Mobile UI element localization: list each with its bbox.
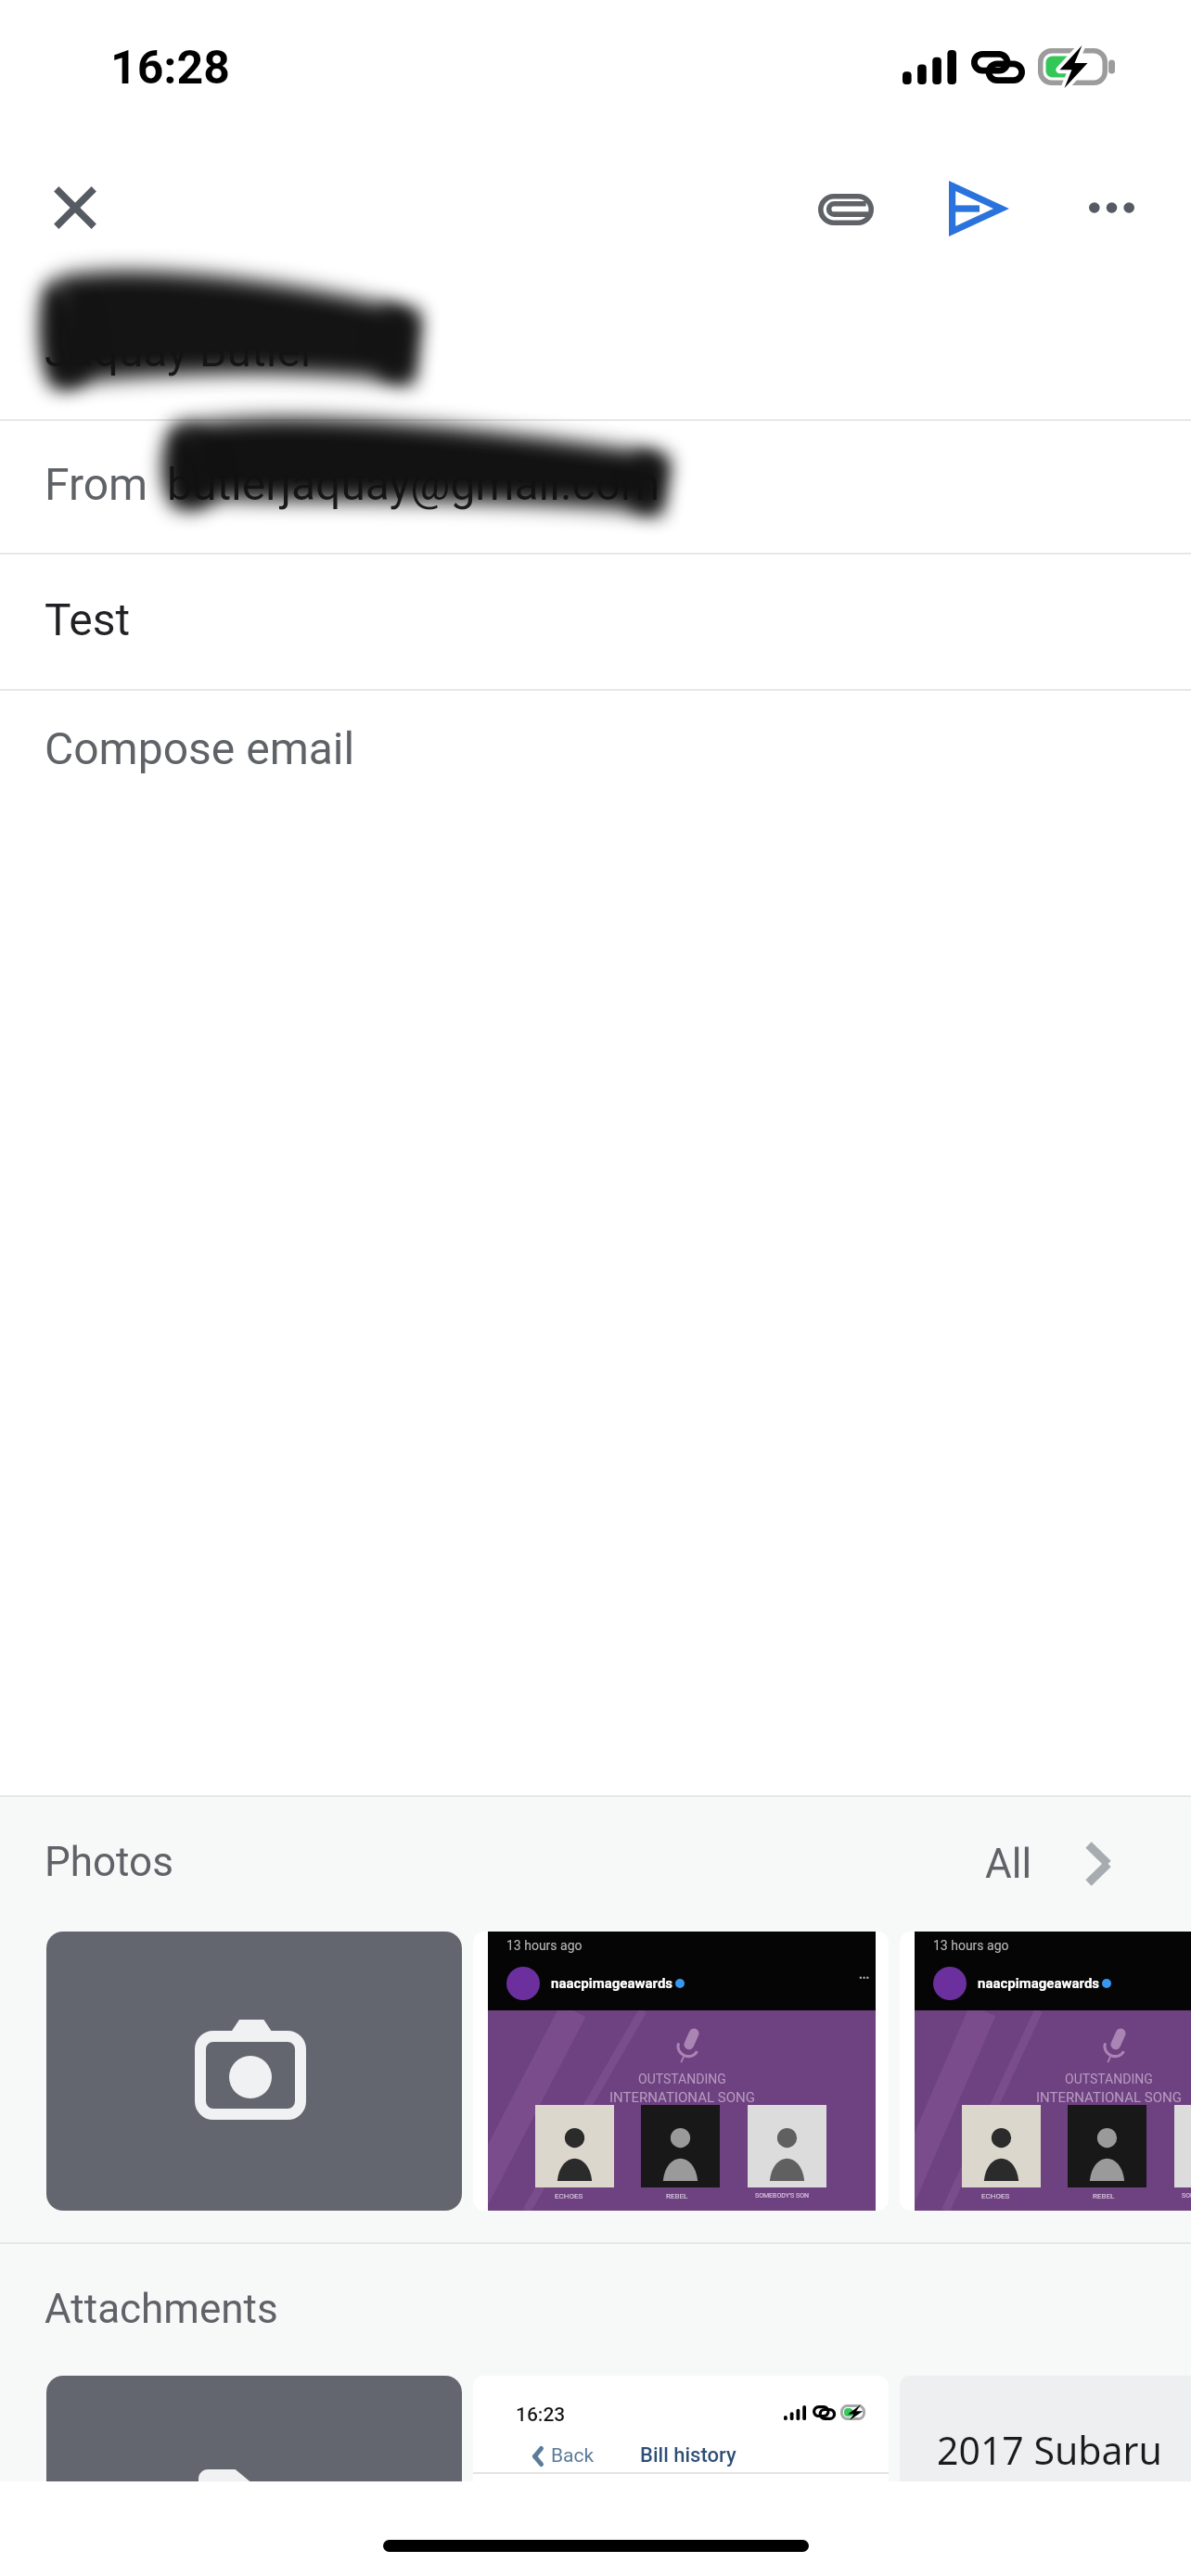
staticText: naacpimageawards (551, 1975, 673, 1992)
other: VPN (971, 51, 1025, 83)
staticText: Compose email (45, 722, 355, 774)
staticText: Test (45, 593, 131, 645)
staticText: Photos (45, 1838, 173, 1886)
button[interactable]: Attach file (790, 154, 902, 265)
staticText: 13 hours ago (506, 1938, 583, 1953)
staticText: Jaquay Butler (45, 325, 316, 376)
button[interactable]: Photo (900, 1932, 1191, 2211)
staticText: Attachments (45, 2285, 278, 2333)
staticText: From (45, 458, 148, 510)
staticText: REBEL (1093, 2192, 1115, 2200)
staticText: INTERNATIONAL SONG (1036, 2089, 1182, 2106)
button[interactable]: Send (921, 153, 1032, 264)
staticText: SOMEBODY'S SON (755, 2192, 809, 2200)
button[interactable]: Compose email (0, 691, 1191, 830)
staticText: ECHOES (555, 2192, 583, 2200)
staticText: ECHOES (981, 2192, 1010, 2200)
staticText: REBEL (666, 2192, 688, 2200)
staticText: naacpimageawards (978, 1975, 1100, 1992)
other: Signal strength (903, 50, 956, 84)
staticText: INTERNATIONAL SONG (609, 2089, 755, 2106)
staticText: butlerjaquay@gmail.com (167, 458, 660, 510)
button[interactable]: Close (19, 152, 131, 263)
button[interactable]: Jaquay Butler (0, 287, 1191, 420)
staticText: 16:28 (110, 41, 230, 96)
button[interactable]: More options (1056, 152, 1167, 263)
button[interactable]: From (0, 421, 1191, 554)
staticText: OUTSTANDING (1065, 2072, 1153, 2086)
button[interactable]: All (970, 1819, 1127, 1908)
staticText: 2017 Subaru (937, 2424, 1162, 2476)
staticText: OUTSTANDING (638, 2072, 726, 2086)
button[interactable]: Attachment (900, 2376, 1191, 2481)
button[interactable]: Attachment (46, 2376, 462, 2481)
staticText: SOMEBODY'S SON (1182, 2192, 1191, 2200)
staticText: Back (551, 2444, 595, 2468)
staticText: All (985, 1840, 1032, 1888)
button[interactable]: Test (0, 555, 1191, 690)
other: Battery charging (1038, 48, 1116, 85)
staticText: ••• (859, 1972, 870, 1984)
button[interactable]: Take photo (46, 1932, 462, 2211)
button[interactable]: Attachment (473, 2376, 889, 2481)
staticText: Bill history (640, 2443, 736, 2468)
staticText: 16:23 (516, 2404, 566, 2427)
staticText: 13 hours ago (933, 1938, 1009, 1953)
button[interactable]: Photo (473, 1932, 889, 2211)
